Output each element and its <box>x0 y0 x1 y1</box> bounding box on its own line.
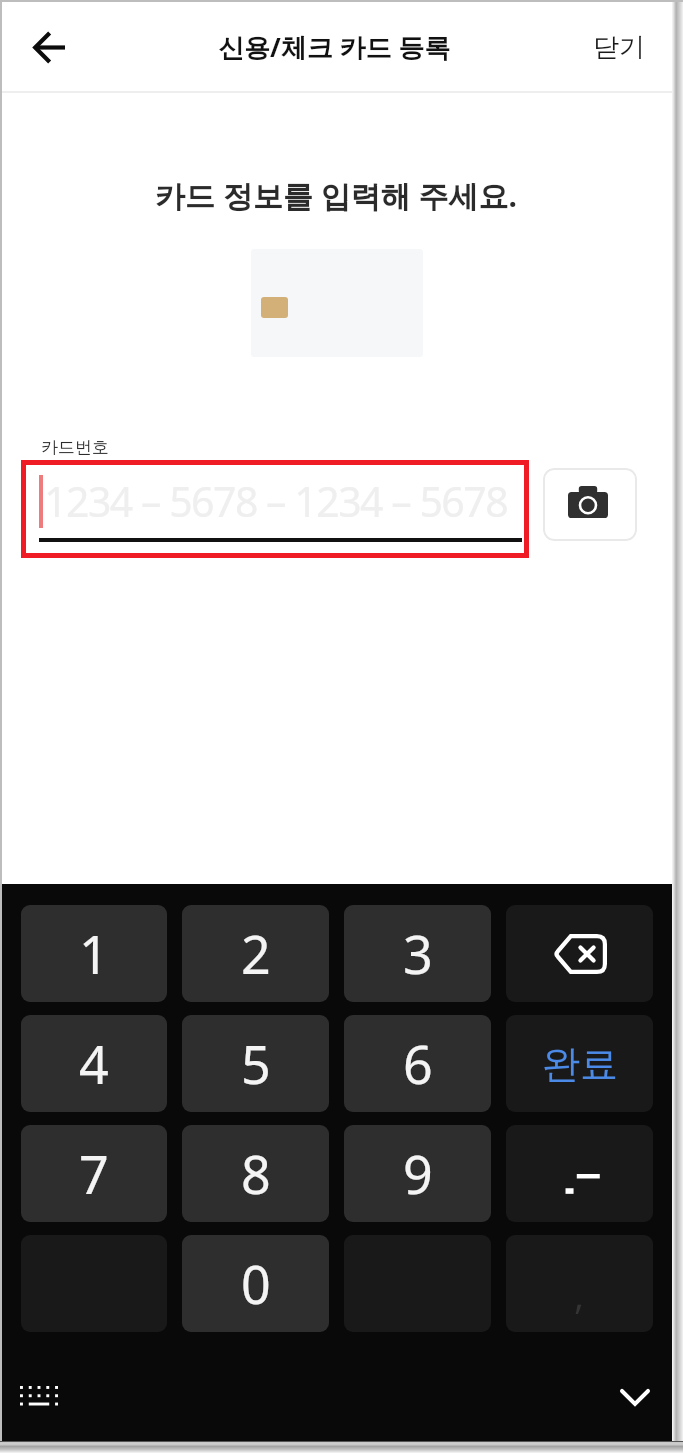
button[interactable]: 0 <box>182 1235 329 1332</box>
staticText: 카드 정보를 입력해 주세요. <box>1 175 671 216</box>
button[interactable]: 9 <box>344 1125 491 1222</box>
button[interactable]: 7 <box>21 1125 167 1222</box>
button[interactable]: 4 <box>21 1015 167 1112</box>
staticText: 5 <box>241 1028 271 1099</box>
staticText: 1 <box>79 918 109 989</box>
button[interactable]: 1234 – 5678 – 1234 – 5678 <box>21 460 529 558</box>
button[interactable]: Scan card with camera <box>543 468 637 541</box>
staticText: 0 <box>241 1248 271 1319</box>
staticText: 신용/체크 카드 등록 <box>218 29 451 65</box>
button[interactable]: 5 <box>182 1015 329 1112</box>
staticText: 2 <box>241 918 271 989</box>
button[interactable]: 6 <box>344 1015 491 1112</box>
button[interactable]: 완료 <box>506 1015 653 1112</box>
staticText: 8 <box>241 1138 271 1209</box>
button[interactable]: 2 <box>182 905 329 1002</box>
button[interactable]: 1 <box>21 905 167 1002</box>
staticText: 6 <box>403 1028 433 1099</box>
button[interactable]: 닫기 <box>571 11 672 83</box>
button[interactable]: Backspace <box>506 905 653 1002</box>
staticText: 완료 <box>542 1040 618 1088</box>
staticText: 카드번호 <box>41 437 109 458</box>
staticText: , <box>574 1268 585 1320</box>
staticText: 1234 – 5678 – 1234 – 5678 <box>44 473 508 529</box>
staticText: 9 <box>403 1138 433 1209</box>
staticText: 3 <box>403 918 433 989</box>
other: Backspace <box>553 934 607 974</box>
button[interactable]: Back <box>13 11 85 83</box>
other: Dot and dash <box>557 1158 603 1190</box>
button[interactable]: 3 <box>344 905 491 1002</box>
button[interactable]: Hide keyboard <box>609 1371 661 1423</box>
button[interactable]: 8 <box>182 1125 329 1222</box>
button[interactable]: Dot and dash <box>506 1125 653 1222</box>
staticText: 닫기 <box>593 31 645 64</box>
button[interactable]: Switch keyboard <box>13 1371 65 1423</box>
staticText: 7 <box>79 1138 109 1209</box>
staticText: 4 <box>79 1028 109 1099</box>
